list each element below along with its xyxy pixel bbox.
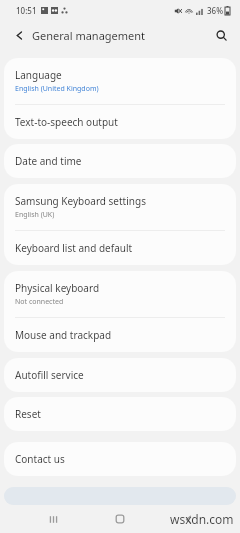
button[interactable]: Text-to-speech output — [4, 105, 236, 139]
button[interactable]: Recents — [38, 505, 68, 533]
button[interactable]: Physical keyboard — [4, 271, 236, 317]
button[interactable]: Back — [8, 24, 30, 46]
staticText: Mouse and trackpad — [15, 328, 112, 342]
staticText: English (United Kingdom) — [15, 84, 99, 94]
staticText: Not connected — [15, 297, 64, 307]
staticText: Autofill service — [15, 368, 84, 382]
staticText: Reset — [15, 407, 41, 421]
staticText: Contact us — [15, 452, 65, 466]
button[interactable]: Back — [173, 505, 203, 533]
staticText: Text-to-speech output — [15, 115, 118, 129]
staticText: General management — [32, 28, 146, 43]
button[interactable]: Home — [105, 505, 135, 533]
button[interactable]: Language — [4, 58, 236, 104]
staticText: Physical keyboard — [15, 281, 100, 295]
staticText: wsxdn.com — [170, 511, 234, 527]
staticText: 36% — [207, 5, 223, 16]
button[interactable]: Keyboard list and default — [4, 231, 236, 265]
button[interactable]: Samsung Keyboard settings — [4, 184, 236, 230]
staticText: Date and time — [15, 154, 82, 168]
button[interactable]: Date and time — [4, 144, 236, 178]
staticText: 10:51 — [16, 5, 37, 16]
button[interactable]: Autofill service — [4, 358, 236, 392]
staticText: Language — [15, 68, 62, 82]
staticText: English (UK) — [15, 210, 55, 220]
button[interactable]: Search — [210, 24, 232, 46]
staticText: Samsung Keyboard settings — [15, 194, 146, 208]
button[interactable]: Mouse and trackpad — [4, 318, 236, 352]
button[interactable]: Contact us — [4, 442, 236, 476]
staticText: Keyboard list and default — [15, 241, 133, 255]
button[interactable]: Reset — [4, 397, 236, 431]
